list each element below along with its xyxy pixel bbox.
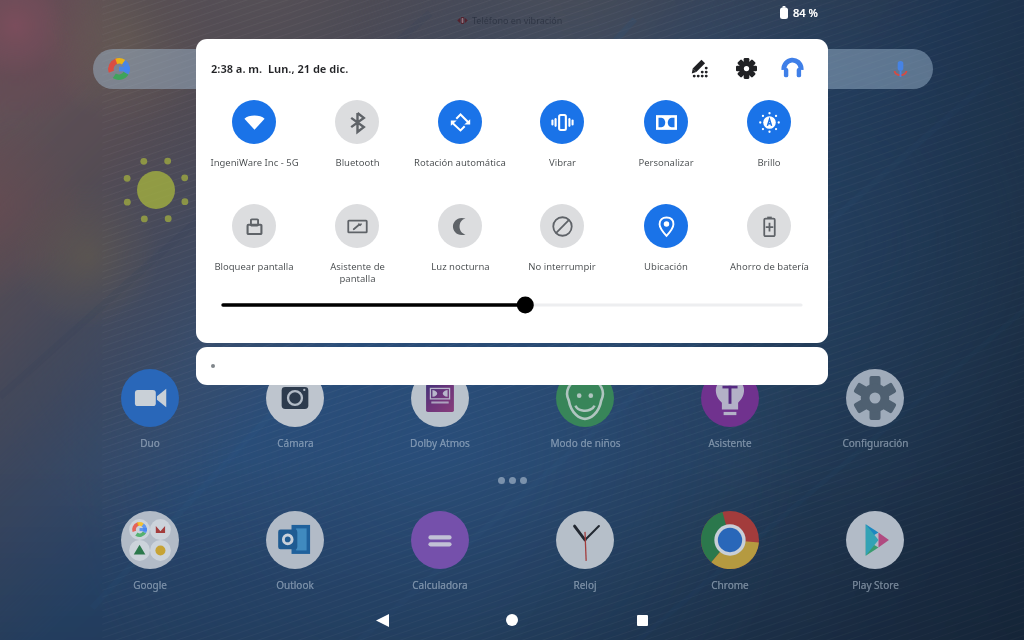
staticText: Google [133,578,167,592]
staticText: 2:38 a. m. Lun., 21 de dic. [211,61,349,76]
button[interactable]: Modo de niños [525,369,645,450]
staticText: Outlook [276,578,314,592]
button[interactable]: Bluetooth [307,100,407,169]
button[interactable]: Brillo [719,100,819,169]
staticText: Vibrar [549,156,576,169]
button[interactable]: Calculadora [380,511,500,592]
staticText: Chrome [711,578,749,592]
staticText: Configuración [842,436,909,450]
button[interactable]: Ubicación [616,204,716,273]
button[interactable]: Home [447,600,577,640]
button[interactable]: Outlook [235,511,355,592]
button[interactable]: Luz nocturna [410,204,510,273]
button[interactable]: Duo [90,369,210,450]
staticText: Asistente de pantalla [330,260,385,285]
button[interactable]: Cámara [235,369,355,450]
button[interactable]: IngeniWare Inc - 5G [204,100,304,169]
staticText: Luz nocturna [431,260,490,273]
staticText: No interrumpir [528,260,596,273]
staticText: Cámara [277,436,314,450]
staticText: Personalizar [638,156,694,169]
staticText: IngeniWare Inc - 5G [210,156,299,169]
staticText: Bluetooth [335,156,380,169]
button[interactable] [196,347,828,385]
button[interactable]: Configuración [815,369,935,450]
staticText: Dolby Atmos [410,436,470,450]
button[interactable]: Reloj [525,511,645,592]
staticText: Calculadora [412,578,468,592]
staticText: Play Store [852,578,899,592]
button[interactable]: Chrome [670,511,790,592]
button[interactable]: Asistente [670,369,790,450]
button[interactable]: Rotación automática [410,100,510,169]
button[interactable]: Bloquear pantalla [204,204,304,273]
button[interactable]: Dolby Atmos [380,369,500,450]
staticText: Reloj [573,578,597,592]
staticText: 84 % [793,5,818,20]
button[interactable]: Asistente de pantalla [307,204,407,285]
button[interactable]: Play Store [815,511,935,592]
staticText: Brillo [757,156,781,169]
button[interactable]: Google [90,511,210,592]
button[interactable]: User account [776,52,808,84]
staticText: Asistente [708,436,752,450]
staticText: Duo [140,436,160,450]
staticText: Rotación automática [414,156,506,169]
button[interactable]: Vibrar [512,100,612,169]
staticText: Bloquear pantalla [214,260,294,273]
button[interactable]: Recents [577,600,707,640]
button[interactable]: Personalizar [616,100,716,169]
button[interactable]: Back [317,600,447,640]
button[interactable]: No interrumpir [512,204,612,273]
button[interactable]: Ahorro de batería [719,204,819,273]
staticText: Ubicación [644,260,688,273]
staticText: Modo de niños [550,436,621,450]
button[interactable]: Settings [730,52,762,84]
button[interactable] [93,49,933,89]
staticText: Ahorro de batería [730,260,809,273]
button[interactable]: Edit tiles [684,52,716,84]
staticText: Teléfono en vibración [472,14,563,26]
